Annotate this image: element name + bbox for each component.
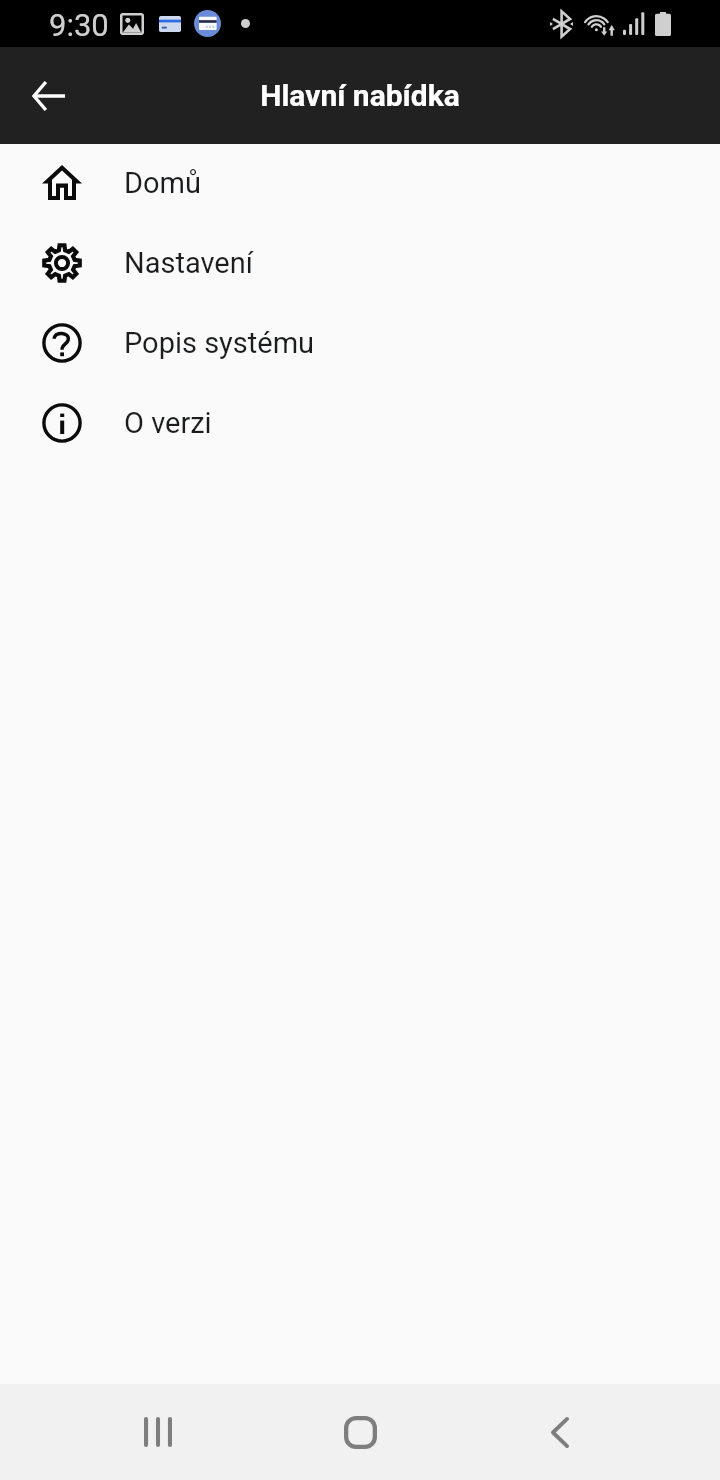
button[interactable]: Recent apps <box>108 1384 208 1480</box>
staticText: 9:30 <box>49 7 109 43</box>
staticText: Nastavení <box>124 246 253 280</box>
staticText: Domů <box>124 166 201 200</box>
button[interactable]: O verzi <box>0 383 720 463</box>
button[interactable]: Nastavení <box>0 223 720 303</box>
button[interactable]: Back <box>510 1384 610 1480</box>
button[interactable]: Back <box>20 68 76 124</box>
staticText: Hlavní nabídka <box>260 78 460 113</box>
button[interactable]: Popis systému <box>0 303 720 383</box>
button[interactable]: Home <box>310 1384 410 1480</box>
staticText: Popis systému <box>124 326 315 360</box>
staticText: O verzi <box>124 406 212 440</box>
button[interactable]: Domů <box>0 143 720 223</box>
